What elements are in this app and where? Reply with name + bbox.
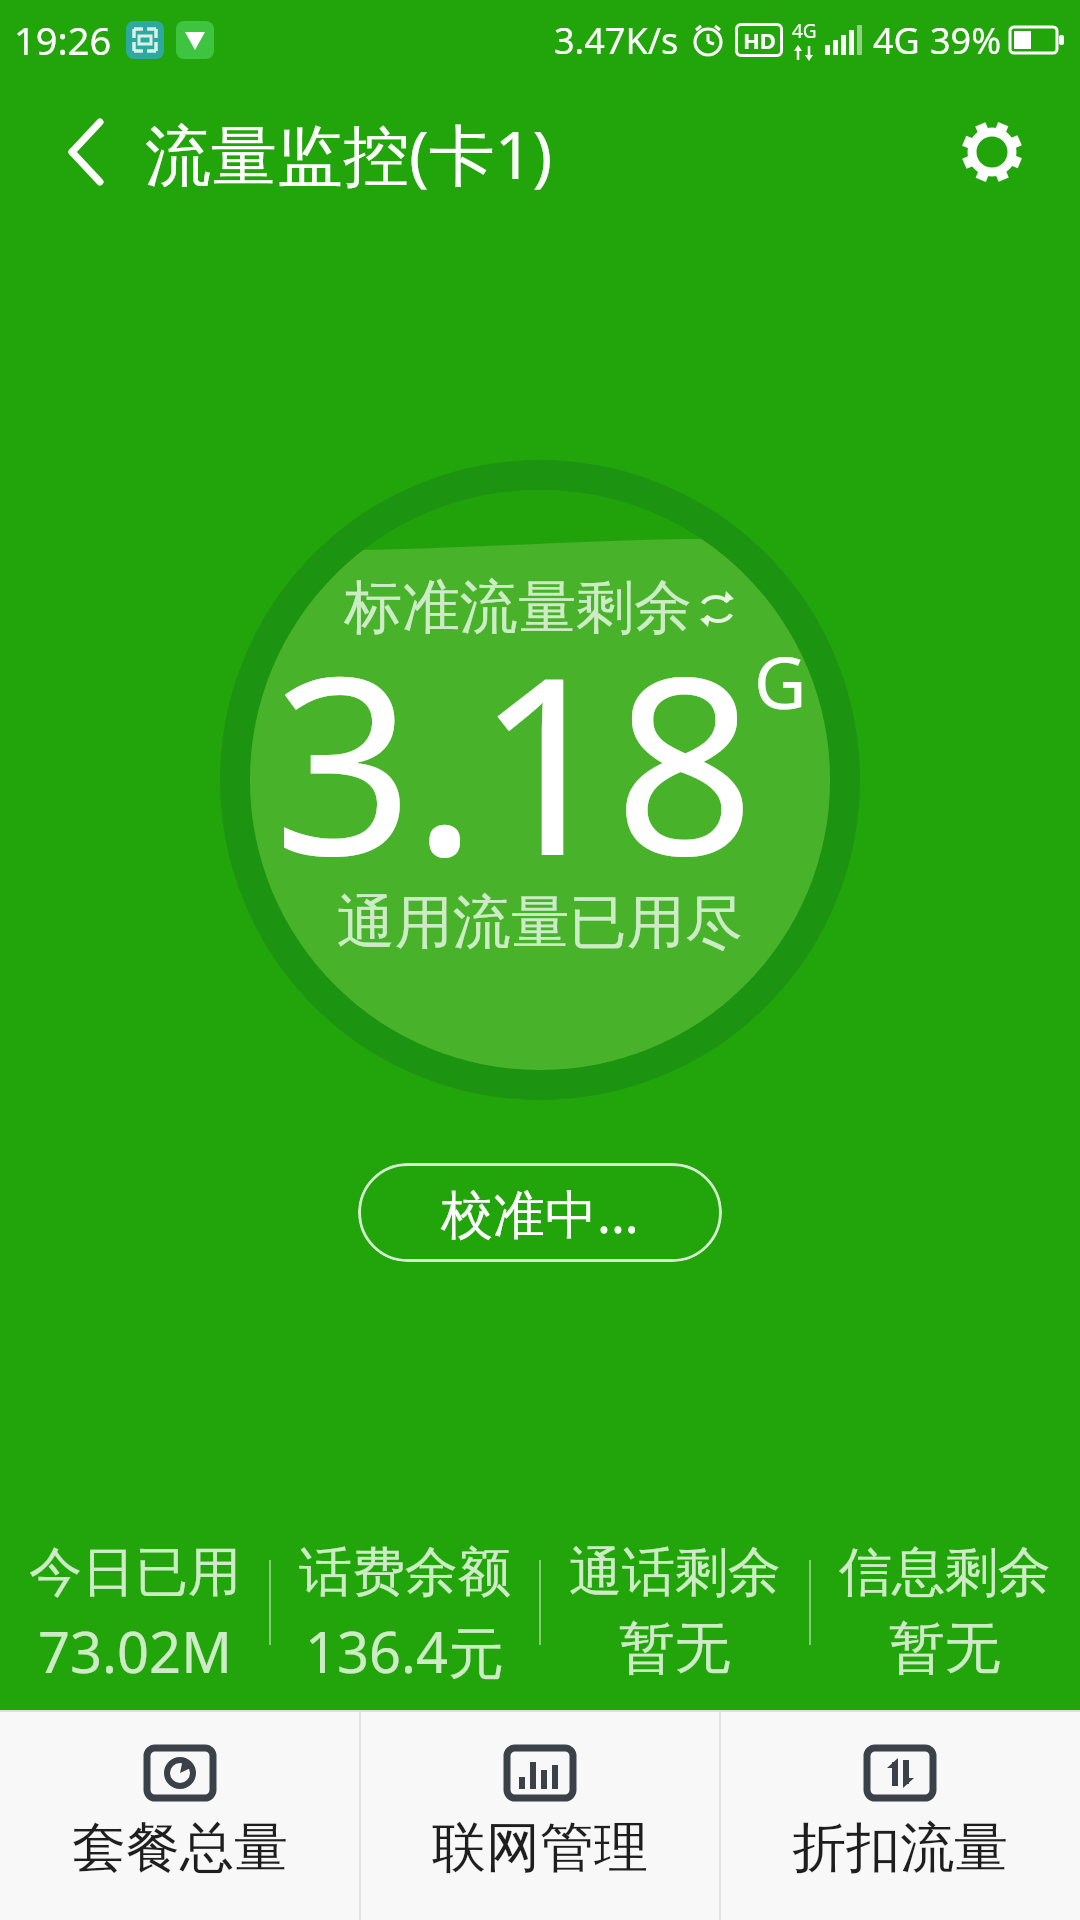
- button[interactable]: [958, 120, 1026, 188]
- staticText: G: [754, 632, 807, 730]
- staticText: 信息剩余: [839, 1539, 1051, 1606]
- staticText: 19:26: [14, 14, 112, 66]
- staticText: 今日已用: [29, 1539, 241, 1606]
- button[interactable]: 套餐总量: [0, 1710, 360, 1920]
- staticText: 暂无: [889, 1613, 1001, 1683]
- staticText: 73.02M: [38, 1613, 232, 1683]
- staticText: 套餐总量: [72, 1814, 288, 1882]
- staticText: 暂无: [619, 1613, 731, 1683]
- staticText: 话费余额: [299, 1539, 511, 1606]
- staticText: 校准中...: [441, 1177, 639, 1248]
- staticText: 联网管理: [432, 1814, 648, 1882]
- button[interactable]: 折扣流量: [720, 1710, 1080, 1920]
- button[interactable]: 校准中...: [358, 1163, 722, 1262]
- staticText: 标准流量剩余: [344, 571, 692, 644]
- staticText: 折扣流量: [792, 1814, 1008, 1882]
- button[interactable]: [62, 120, 112, 170]
- staticText: 流量监控(卡1): [145, 108, 553, 198]
- staticText: 4G: [792, 18, 817, 44]
- staticText: HD: [743, 25, 776, 55]
- staticText: 通话剩余: [569, 1539, 781, 1606]
- staticText: 136.4元: [305, 1613, 505, 1683]
- staticText: 39%: [930, 16, 1002, 65]
- staticText: 3.18: [273, 592, 754, 872]
- staticText: 3.47K/s: [554, 16, 679, 65]
- staticText: 4G: [873, 16, 920, 65]
- staticText: 通用流量已用尽: [337, 886, 743, 959]
- button[interactable]: 联网管理: [360, 1710, 720, 1920]
